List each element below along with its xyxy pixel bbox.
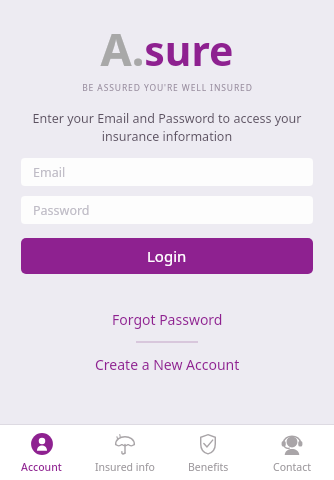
button[interactable]: Login: [21, 238, 313, 274]
button[interactable]: Create a New Account: [50, 355, 284, 374]
staticText: Account: [21, 460, 62, 474]
staticText: Create a New Account: [95, 355, 240, 374]
staticText: Enter your Email and Password to access …: [26, 110, 308, 145]
button[interactable]: Forgot Password: [60, 310, 274, 329]
button[interactable]: Benefits: [166, 425, 250, 480]
staticText: Email: [33, 164, 66, 181]
staticText: Contact: [273, 460, 311, 474]
staticText: Forgot Password: [112, 310, 223, 329]
button[interactable]: Contact: [250, 425, 334, 480]
button[interactable]: Account: [0, 425, 83, 480]
button[interactable]: Email: [21, 158, 313, 186]
staticText: A.sure: [100, 18, 234, 79]
button[interactable]: Insured info: [83, 425, 166, 480]
button[interactable]: Password: [21, 196, 313, 224]
staticText: BE ASSURED YOU'RE WELL INSURED: [82, 82, 253, 94]
staticText: Login: [147, 246, 187, 266]
staticText: Insured info: [95, 460, 155, 474]
staticText: Benefits: [188, 460, 229, 474]
staticText: Password: [33, 202, 90, 219]
